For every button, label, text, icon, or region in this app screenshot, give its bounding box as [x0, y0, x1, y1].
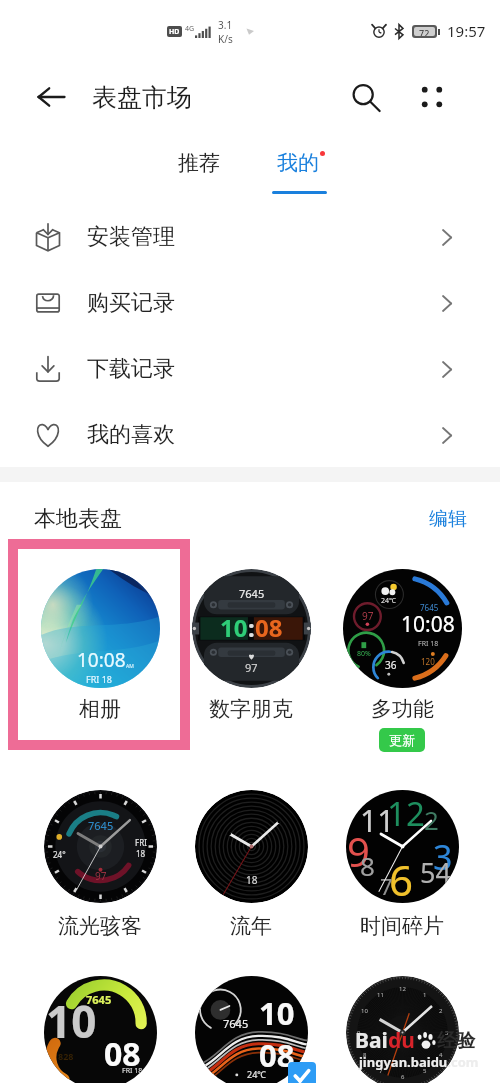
staticText: 828	[58, 1050, 74, 1062]
staticText: 推荐	[178, 150, 220, 176]
staticText: 12	[387, 791, 425, 836]
staticText: 7645	[239, 586, 265, 601]
button[interactable]: Watch face	[179, 958, 323, 1083]
staticText: :	[248, 611, 255, 644]
button[interactable]: 购买记录	[0, 270, 500, 336]
staticText: 24°	[53, 849, 66, 860]
staticText: 3	[445, 1029, 449, 1037]
staticText: 我的喜欢	[87, 421, 175, 449]
staticText: 10	[259, 992, 295, 1034]
button[interactable]: 7645	[28, 772, 172, 943]
staticText: 97	[95, 869, 107, 883]
button[interactable]: 我的	[261, 150, 339, 202]
staticText: FRI 18	[122, 1066, 143, 1076]
staticText: 10:08	[401, 610, 455, 639]
staticText: 18	[246, 873, 258, 887]
staticText: 5	[423, 1067, 427, 1075]
staticText: 3.1	[218, 18, 233, 32]
button[interactable]: 18	[179, 772, 323, 943]
staticText: 4	[439, 1051, 443, 1059]
staticText: 下载记录	[87, 355, 175, 383]
staticText: Bai	[355, 1026, 388, 1055]
staticText: 6	[401, 1073, 405, 1081]
staticText: 97	[245, 660, 258, 675]
staticText: 54	[420, 854, 451, 891]
staticText: 更新	[389, 732, 415, 748]
staticText: 10	[361, 1007, 368, 1015]
staticText: 08	[104, 1032, 141, 1076]
staticText: 7	[380, 871, 393, 901]
staticText: 数字朋克	[209, 696, 293, 722]
button[interactable]: 12	[330, 772, 474, 943]
staticText: 08	[255, 611, 283, 644]
button[interactable]: Watch face	[28, 958, 172, 1083]
staticText: 购买记录	[87, 289, 175, 317]
button[interactable]: 24℃	[330, 551, 474, 728]
staticText: 10	[46, 991, 97, 1051]
button[interactable]: 推荐	[164, 150, 234, 196]
staticText: 120	[421, 656, 435, 667]
staticText: 72	[419, 27, 430, 36]
staticText: jingyan.baidu.com	[359, 1053, 479, 1071]
staticText: 编辑	[429, 507, 467, 531]
staticText: 7645	[420, 602, 439, 613]
button[interactable]: Watch face	[330, 958, 474, 1083]
button[interactable]: 10:08	[28, 551, 172, 728]
button[interactable]: 下载记录	[0, 336, 500, 402]
staticText: 流光骇客	[58, 913, 142, 939]
staticText: 7645	[88, 818, 114, 833]
button[interactable]: 安装管理	[0, 204, 500, 270]
staticText: 10	[220, 611, 248, 644]
button[interactable]: 编辑	[423, 501, 473, 537]
staticText: 安装管理	[87, 223, 175, 251]
staticText: 11	[377, 991, 384, 999]
staticText: 8	[363, 1051, 367, 1059]
staticText: FRI	[135, 837, 147, 848]
staticText: 97	[362, 609, 374, 623]
staticText: 2	[439, 1007, 443, 1015]
staticText: 多功能	[371, 696, 434, 722]
staticText: 6	[389, 851, 414, 903]
staticText: 36	[385, 658, 397, 672]
staticText: 9	[347, 824, 370, 878]
staticText: HD	[169, 27, 180, 37]
staticText: 1	[423, 991, 427, 999]
staticText: 9	[357, 1029, 361, 1037]
staticText: FRI 18	[418, 639, 439, 649]
staticText: 24℃	[381, 596, 396, 606]
staticText: 相册	[79, 696, 121, 722]
staticText: 3	[433, 834, 453, 880]
button[interactable]: 7645	[179, 551, 323, 728]
staticText: 7	[379, 1067, 383, 1075]
staticText: 8	[360, 848, 375, 883]
staticText: 时间碎片	[360, 913, 444, 939]
staticText: 2	[424, 802, 439, 837]
staticText: 10:08	[77, 647, 126, 673]
staticText: 19:57	[447, 21, 486, 41]
staticText: 我的	[277, 150, 319, 176]
staticText: 4G	[185, 24, 195, 34]
staticText: du	[388, 1026, 415, 1055]
staticText: 7645	[86, 992, 112, 1007]
staticText: AM	[126, 663, 134, 670]
button[interactable]: Back	[29, 75, 73, 119]
staticText: K/s	[218, 32, 233, 44]
button[interactable]: Search	[342, 74, 388, 120]
button[interactable]: Apps	[409, 74, 455, 120]
staticText: 表盘市场	[92, 82, 192, 113]
staticText: FRI 18	[86, 673, 112, 685]
staticText: 11	[360, 800, 395, 841]
staticText: 24℃	[247, 1068, 267, 1080]
staticText: 18	[136, 848, 146, 859]
staticText: 08	[259, 1034, 295, 1076]
staticText: 经验	[437, 1029, 475, 1053]
staticText: 12	[399, 985, 406, 993]
staticText: 80%	[357, 649, 371, 659]
staticText: 流年	[230, 913, 272, 939]
button[interactable]: 我的喜欢	[0, 402, 500, 468]
staticText: 7645	[223, 1016, 249, 1031]
staticText: 本地表盘	[34, 505, 122, 533]
